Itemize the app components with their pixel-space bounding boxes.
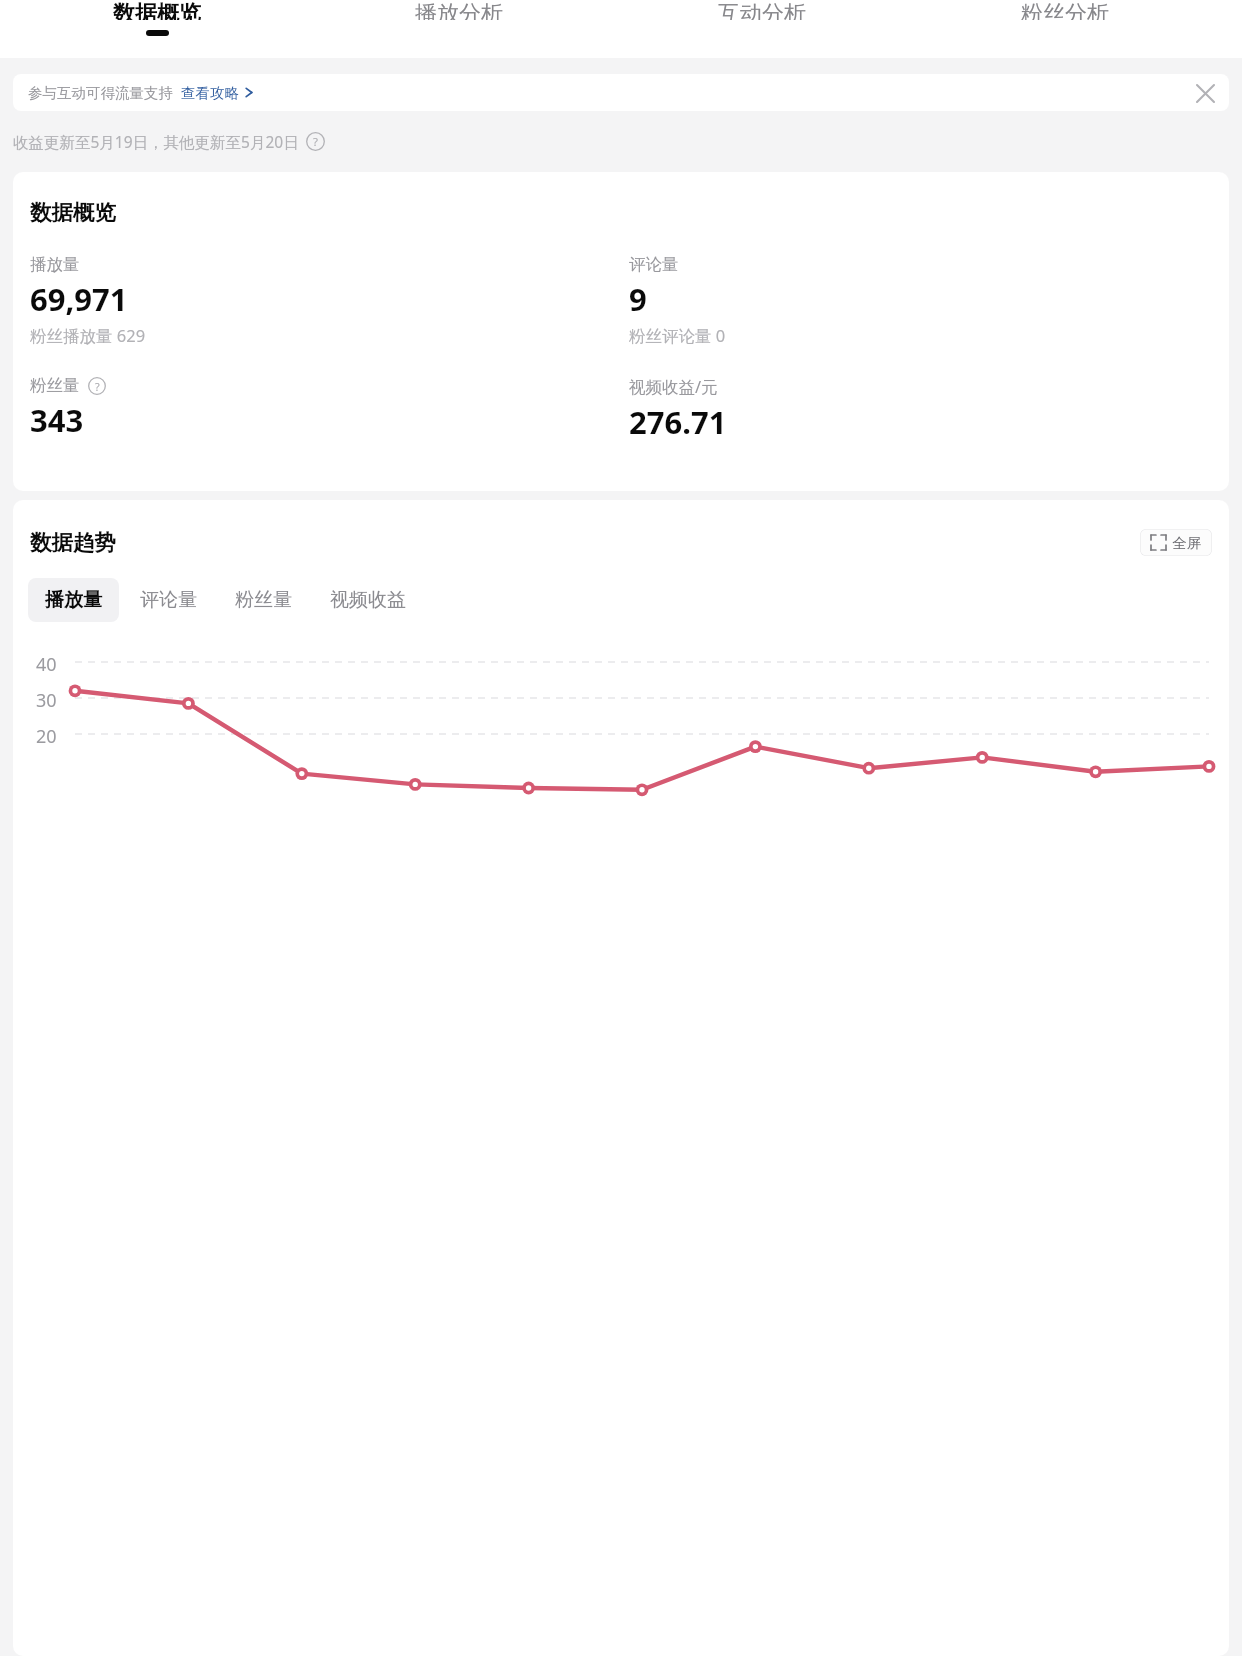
staticText: 数据概览	[30, 199, 116, 226]
button[interactable]: 互动分析	[610, 0, 913, 58]
button[interactable]: 评论量	[629, 254, 1229, 347]
button[interactable]: 视频收益/元	[629, 375, 1229, 443]
staticText: 粉丝评论量 0	[629, 324, 726, 347]
button[interactable]: 播放分析	[308, 0, 610, 58]
staticText: 343	[30, 399, 84, 441]
button[interactable]: 播放量	[30, 254, 629, 347]
staticText: 粉丝播放量 629	[30, 324, 146, 347]
staticText: 粉丝分析	[1021, 0, 1109, 20]
button[interactable]: 数据概览	[6, 0, 308, 58]
staticText: 评论量	[140, 588, 197, 612]
staticText: 参与互动可得流量支持	[28, 84, 173, 102]
staticText: 播放量	[30, 254, 80, 275]
staticText: ?	[313, 134, 318, 150]
button[interactable]: 粉丝量	[30, 375, 629, 441]
button[interactable]: 收益更新至5月19日，其他更新至5月20日	[13, 131, 325, 152]
staticText: ?	[95, 379, 100, 394]
staticText: 播放分析	[415, 0, 503, 20]
staticText: 20	[36, 724, 57, 749]
button[interactable]: 全屏	[1140, 529, 1212, 556]
staticText: 40	[36, 652, 57, 677]
staticText: 播放量	[45, 588, 102, 612]
staticText: 视频收益/元	[629, 375, 718, 398]
button[interactable]: 播放量	[28, 578, 119, 622]
staticText: 互动分析	[718, 0, 806, 20]
staticText: 数据概览	[113, 0, 201, 20]
staticText: 69,971	[30, 278, 128, 320]
staticText: 全屏	[1172, 534, 1201, 552]
staticText: 评论量	[629, 254, 679, 275]
button[interactable]: 视频收益	[313, 578, 423, 622]
button[interactable]: 关闭	[1187, 75, 1223, 111]
staticText: 276.71	[629, 401, 727, 443]
staticText: 视频收益	[330, 588, 406, 612]
staticText: 查看攻略	[181, 84, 239, 102]
button[interactable]: 粉丝量	[218, 578, 309, 622]
staticText: 粉丝量	[235, 588, 292, 612]
staticText: 数据趋势	[30, 529, 116, 556]
staticText: 收益更新至5月19日，其他更新至5月20日	[13, 131, 299, 152]
staticText: 粉丝量	[30, 375, 80, 396]
button[interactable]: 参与互动可得流量支持	[13, 74, 1229, 111]
staticText: 9	[629, 278, 647, 320]
button[interactable]: 粉丝分析	[913, 0, 1216, 58]
button[interactable]: 评论量	[123, 578, 214, 622]
staticText: 30	[36, 688, 57, 713]
